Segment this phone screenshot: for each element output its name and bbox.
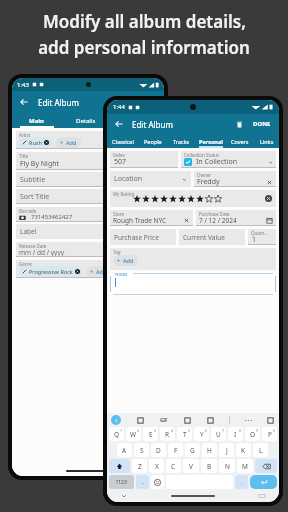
button[interactable]: DONE (251, 120, 273, 128)
button[interactable]: Star (159, 194, 168, 203)
button[interactable]: + (86, 266, 111, 277)
button[interactable]: Location (110, 171, 191, 187)
button[interactable]: Classical (107, 134, 139, 148)
button[interactable]: Star (150, 194, 159, 203)
button[interactable]: Back (18, 96, 30, 108)
button[interactable]: Period (235, 475, 248, 489)
button[interactable]: Star (195, 194, 204, 203)
button[interactable]: Star (168, 194, 177, 203)
button[interactable]: Clear owner (266, 179, 273, 186)
button[interactable]: GIF (160, 417, 168, 423)
button[interactable]: Purchase Price (110, 229, 176, 245)
staticText: R (165, 430, 170, 439)
button[interactable]: + (56, 137, 81, 148)
button[interactable]: People (139, 134, 167, 148)
button[interactable]: L (253, 443, 268, 457)
staticText: + (60, 139, 64, 147)
button[interactable]: F (168, 443, 183, 457)
button[interactable]: + (113, 255, 138, 266)
button[interactable]: Purchase Date (196, 210, 276, 226)
button[interactable]: R (160, 427, 175, 441)
button[interactable]: Details (61, 113, 110, 128)
button[interactable]: Owner (194, 171, 276, 187)
button[interactable]: Label (16, 224, 160, 239)
button[interactable]: Clear store (183, 217, 190, 224)
button[interactable]: P (262, 427, 277, 441)
button[interactable]: More (244, 416, 252, 425)
button[interactable]: Clear rating (265, 195, 272, 202)
button[interactable]: Star (132, 194, 141, 203)
button[interactable]: Emoji (151, 475, 164, 489)
button[interactable]: Progressive Rock (19, 266, 83, 277)
button[interactable]: Store (110, 210, 193, 226)
button[interactable]: Comma (136, 475, 149, 489)
button[interactable]: Genre (16, 260, 160, 278)
button[interactable]: Clipboard (183, 416, 192, 425)
button[interactable]: Star (141, 194, 150, 203)
staticText: Title (19, 153, 28, 159)
button[interactable]: A (117, 443, 132, 457)
button[interactable]: Collection Status (181, 151, 276, 168)
button[interactable]: Subtitle (16, 172, 160, 187)
button[interactable]: Release Date (16, 242, 160, 257)
button[interactable]: Star (213, 194, 222, 203)
button[interactable]: T (177, 427, 192, 441)
button[interactable]: Sort Title (16, 189, 160, 204)
button[interactable]: N (219, 459, 235, 473)
button[interactable]: Covers (226, 134, 254, 148)
button[interactable]: E (143, 427, 158, 441)
button[interactable]: Title (16, 152, 160, 170)
button[interactable]: S (134, 443, 149, 457)
button[interactable]: Shift (109, 459, 130, 473)
button[interactable]: Translate (136, 416, 145, 425)
button[interactable]: Star (204, 194, 213, 203)
staticText: 8 (239, 428, 242, 433)
button[interactable]: X (149, 459, 164, 473)
button[interactable]: Back (113, 118, 125, 130)
button[interactable]: Rush (19, 137, 52, 148)
button[interactable]: B (201, 459, 217, 473)
button[interactable]: D (151, 443, 166, 457)
button[interactable]: Settings (206, 416, 215, 425)
button[interactable]: Expand (111, 415, 121, 425)
button[interactable]: Star (186, 194, 195, 203)
button[interactable]: Q (109, 427, 124, 441)
button[interactable]: K (236, 443, 251, 457)
staticText: Add (123, 257, 134, 264)
button[interactable]: Quant... (248, 229, 276, 245)
staticText: 1 (120, 428, 123, 433)
button[interactable]: J (219, 443, 234, 457)
button[interactable]: Tracks (167, 134, 195, 148)
button[interactable]: Barcode (16, 207, 160, 222)
button[interactable]: Y (194, 427, 209, 441)
button[interactable]: H (202, 443, 217, 457)
staticText: Tracks (173, 138, 190, 145)
staticText: Notes (115, 273, 128, 277)
button[interactable]: Classical (110, 113, 164, 128)
button[interactable]: Artist (16, 131, 160, 149)
button[interactable]: Index (110, 151, 178, 168)
button[interactable]: Links (254, 134, 279, 148)
button[interactable]: W (126, 427, 141, 441)
button[interactable] (184, 158, 192, 166)
button[interactable]: Enter (250, 475, 277, 489)
button[interactable]: Z (132, 459, 147, 473)
button[interactable]: I (228, 427, 243, 441)
button[interactable]: Current Value (179, 229, 245, 245)
button[interactable]: O (245, 427, 260, 441)
button[interactable]: Voice input (266, 416, 275, 425)
button[interactable]: Notes (110, 273, 276, 295)
button[interactable]: C (166, 459, 181, 473)
button[interactable]: ?123 (109, 475, 134, 489)
button[interactable]: U (211, 427, 226, 441)
button[interactable]: G (185, 443, 200, 457)
button[interactable]: V (183, 459, 199, 473)
button[interactable]: Backspace (255, 459, 277, 473)
button[interactable]: Star (177, 194, 186, 203)
button[interactable]: M (237, 459, 253, 473)
button[interactable]: Main (12, 113, 61, 128)
button[interactable]: Personal (195, 134, 226, 148)
staticText: U (216, 430, 221, 439)
button[interactable]: Delete (233, 118, 245, 130)
